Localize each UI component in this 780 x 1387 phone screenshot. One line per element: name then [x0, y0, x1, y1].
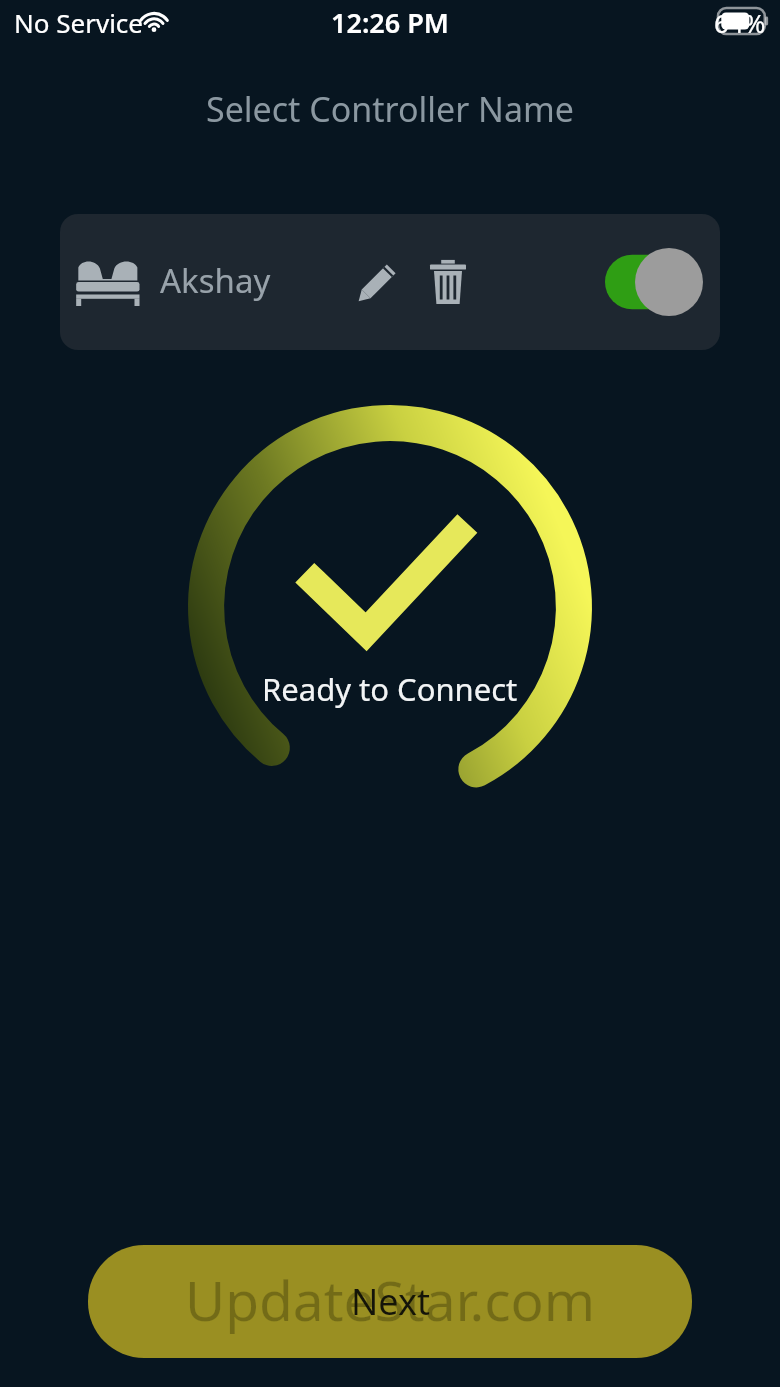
staticText: Akshay	[160, 258, 271, 303]
staticText: Select Controller Name	[206, 86, 574, 132]
button[interactable]: Delete	[418, 252, 478, 312]
staticText: 64%	[714, 5, 766, 40]
other: Bed	[74, 258, 146, 306]
staticText: Ready to Connect	[262, 668, 518, 710]
staticText: UpdateStar.com	[185, 1262, 596, 1337]
button[interactable]: Toggle controller	[605, 248, 703, 316]
staticText: 12:26 PM	[331, 4, 449, 41]
staticText: No Service	[14, 5, 143, 40]
button[interactable]: Edit	[348, 252, 408, 312]
button[interactable]: Next	[88, 1245, 692, 1358]
button[interactable]: Bed	[60, 214, 720, 350]
staticText: Next	[351, 1277, 430, 1326]
